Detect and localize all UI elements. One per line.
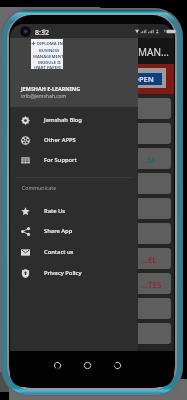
staticText: MODULE II bbox=[38, 60, 61, 66]
button[interactable] bbox=[15, 98, 171, 119]
button[interactable]: Recent apps bbox=[112, 360, 123, 371]
button[interactable]: Jemshah Blog bbox=[10, 110, 138, 130]
staticText: MANAGEMENT bbox=[33, 54, 64, 60]
staticText: OPEN bbox=[133, 74, 154, 84]
staticText: DIPLOMA IN bbox=[37, 41, 63, 47]
button[interactable] bbox=[15, 198, 171, 219]
staticText: 8:32 bbox=[35, 28, 49, 38]
button[interactable] bbox=[15, 223, 171, 244]
button[interactable] bbox=[15, 323, 171, 344]
staticText: Privacy Policy bbox=[44, 269, 82, 277]
staticText: …M bbox=[141, 154, 156, 165]
staticText: (PART PAPER) bbox=[34, 65, 62, 71]
button[interactable]: Rate Us bbox=[10, 201, 138, 221]
button[interactable]: …M bbox=[15, 148, 171, 169]
staticText: BUSINESS bbox=[39, 48, 60, 54]
staticText: JEMSHAH E-LEARNING bbox=[21, 85, 81, 92]
button[interactable]: Contact us bbox=[10, 242, 138, 262]
staticText: Contact us bbox=[44, 248, 74, 256]
staticText: Jemshah Blog bbox=[44, 116, 82, 124]
button[interactable]: Home bbox=[82, 360, 93, 371]
button[interactable]: OPEN bbox=[124, 73, 162, 85]
staticText: …EL bbox=[141, 254, 157, 265]
button[interactable]: For Support bbox=[10, 150, 138, 170]
staticText: MAN… bbox=[138, 45, 169, 59]
staticText: Communicate bbox=[22, 184, 57, 191]
staticText: Rate Us bbox=[44, 207, 66, 215]
staticText: Other APPS bbox=[44, 136, 76, 144]
staticText: For Support bbox=[44, 156, 77, 164]
button[interactable]: …EL bbox=[15, 248, 171, 269]
button[interactable] bbox=[15, 298, 171, 319]
button[interactable]: Back bbox=[52, 360, 63, 371]
staticText: info@jemshah.com bbox=[21, 93, 67, 100]
button[interactable]: …TES bbox=[15, 273, 171, 294]
button[interactable]: Privacy Policy bbox=[10, 263, 138, 283]
button[interactable]: Share App bbox=[10, 221, 138, 241]
staticText: Share App bbox=[44, 227, 73, 235]
staticText: …TES bbox=[141, 279, 162, 290]
button[interactable]: Other APPS bbox=[10, 130, 138, 150]
button[interactable] bbox=[15, 123, 171, 144]
button[interactable] bbox=[15, 173, 171, 194]
